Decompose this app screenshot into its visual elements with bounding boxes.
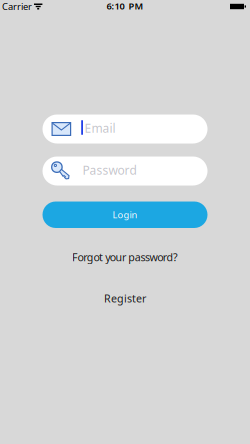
staticText: PM: [128, 0, 143, 12]
staticText: 6:10: [106, 0, 124, 12]
staticText: Email: [84, 120, 115, 136]
button[interactable]: Register: [104, 291, 146, 305]
staticText: Carrier: [2, 0, 32, 13]
button[interactable]: Password: [42, 156, 207, 185]
staticText: Login: [112, 209, 137, 221]
staticText: Forgot your password?: [72, 250, 178, 264]
button[interactable]: Email: [42, 114, 207, 143]
staticText: Password: [82, 162, 136, 178]
button[interactable]: Login: [42, 201, 207, 228]
staticText: Register: [104, 291, 146, 305]
button[interactable]: Forgot your password?: [72, 250, 178, 264]
